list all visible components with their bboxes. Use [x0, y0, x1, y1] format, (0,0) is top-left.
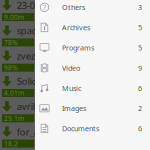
staticText: 5 — [138, 23, 142, 32]
staticText: 6 — [138, 124, 142, 133]
button[interactable]: Programs — [35, 38, 150, 58]
staticText: Music — [62, 83, 81, 93]
staticText: 18.2 — [4, 139, 18, 148]
staticText: Video — [62, 63, 80, 73]
button[interactable]: Music — [35, 78, 150, 98]
button[interactable]: Images — [35, 98, 150, 118]
staticText: 4.01m — [4, 89, 24, 97]
staticText: 3 — [138, 2, 142, 12]
staticText: Archives — [62, 23, 90, 32]
staticText: 9 — [138, 63, 142, 73]
staticText: 78% — [4, 38, 18, 47]
button[interactable]: Archives — [35, 17, 150, 38]
staticText: 29.1m — [4, 114, 24, 123]
staticText: spac — [17, 24, 36, 37]
staticText: Solid — [17, 75, 38, 87]
staticText: 6 — [138, 83, 142, 93]
staticText: 23-0 — [17, 0, 35, 11]
staticText: 9.00m — [4, 13, 24, 22]
staticText: Programs — [62, 43, 94, 53]
button[interactable]: Documents — [35, 118, 150, 139]
staticText: for_a — [17, 126, 39, 138]
staticText: Images — [62, 103, 86, 113]
staticText: 5 — [138, 43, 142, 53]
staticText: Others — [62, 2, 85, 12]
staticText: Documents — [62, 124, 99, 133]
staticText: ? — [43, 2, 46, 12]
staticText: avril — [17, 100, 35, 113]
staticText: 2 — [138, 103, 142, 113]
button[interactable]: Video — [35, 58, 150, 78]
button[interactable]: ? — [35, 0, 150, 17]
staticText: zvez — [17, 50, 35, 62]
staticText: 98% — [4, 63, 18, 72]
